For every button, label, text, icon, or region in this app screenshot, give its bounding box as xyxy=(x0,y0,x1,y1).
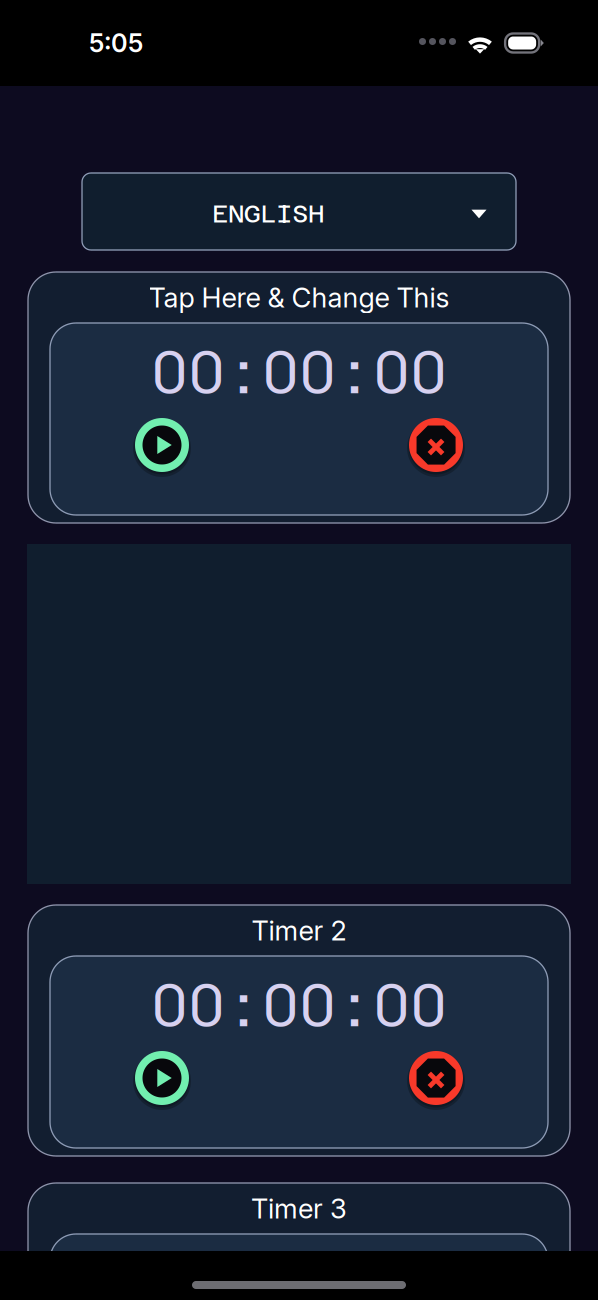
staticText: 00:00:00 xyxy=(151,1246,447,1300)
staticText: ENGLISH xyxy=(212,199,324,228)
staticText: Tap Here & Change This xyxy=(148,281,449,314)
staticText: 5:05 xyxy=(89,28,143,58)
staticText: 00:00:00 xyxy=(151,335,447,409)
button[interactable]: Timer 2 xyxy=(28,905,570,956)
staticText: Timer 2 xyxy=(251,914,346,947)
staticText: 00:00:00 xyxy=(151,968,447,1042)
button[interactable]: ENGLISH xyxy=(0,173,598,250)
button[interactable]: Reset timer xyxy=(409,1051,463,1105)
button[interactable]: Reset timer xyxy=(409,418,463,472)
button[interactable]: Start timer xyxy=(135,418,189,472)
staticText: Timer 3 xyxy=(251,1192,347,1225)
button[interactable]: Start timer xyxy=(135,1051,189,1105)
button[interactable]: Timer 3 xyxy=(28,1183,570,1234)
button[interactable]: Tap Here & Change This xyxy=(28,272,570,323)
